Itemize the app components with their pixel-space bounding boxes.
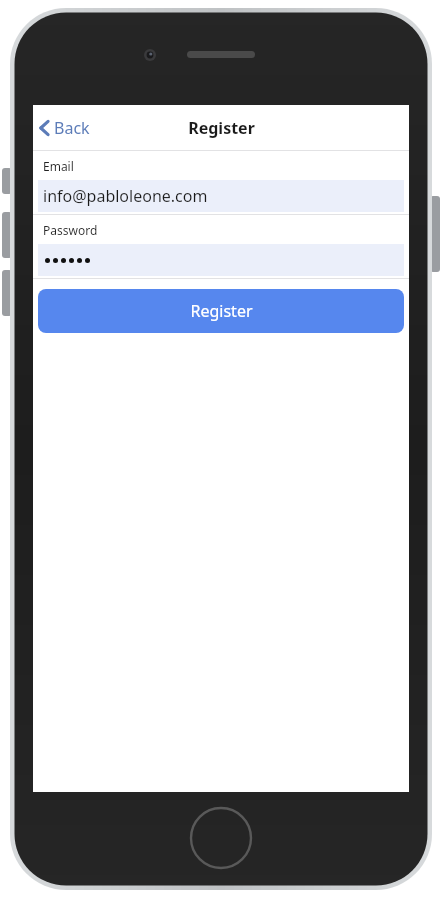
staticText: Register (190, 300, 253, 322)
staticText: info@pabloleone.com (43, 185, 208, 207)
button[interactable]: Password (33, 215, 409, 278)
staticText: Back (54, 117, 90, 139)
staticText: Password (43, 222, 98, 238)
staticText: Email (43, 158, 74, 174)
button[interactable]: Register (38, 289, 404, 333)
button[interactable]: Back (38, 105, 90, 150)
button[interactable]: Email (33, 151, 409, 214)
staticText: Register (188, 117, 255, 139)
